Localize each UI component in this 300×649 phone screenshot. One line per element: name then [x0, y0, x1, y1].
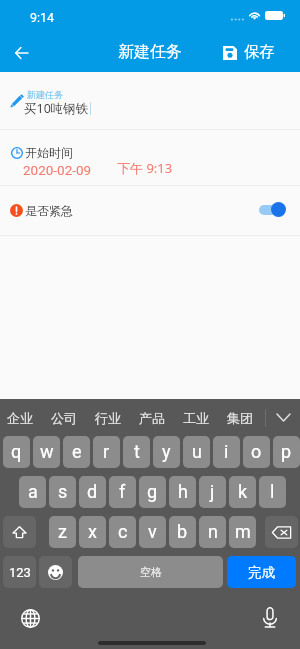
button[interactable]: z	[49, 516, 76, 548]
staticText: d	[87, 481, 98, 502]
button[interactable]: 行业	[86, 399, 130, 436]
button[interactable]: Backspace	[265, 516, 298, 548]
button[interactable]: q	[3, 436, 30, 468]
staticText: l	[270, 481, 275, 502]
button[interactable]: j	[199, 476, 226, 508]
button[interactable]: 开始时间	[0, 130, 300, 185]
staticText: 新建任务	[27, 89, 63, 100]
button[interactable]: f	[109, 476, 136, 508]
staticText: y	[162, 441, 171, 462]
button[interactable]: Back	[0, 28, 42, 72]
staticText: w	[40, 441, 54, 462]
button[interactable]: l	[259, 476, 286, 508]
staticText: 保存	[244, 42, 275, 62]
button[interactable]: Emoji	[39, 556, 72, 588]
staticText: s	[58, 481, 68, 502]
staticText: a	[28, 481, 38, 502]
button[interactable]: p	[273, 436, 300, 468]
button[interactable]: 工业	[174, 399, 218, 436]
button[interactable]: 集团	[218, 399, 262, 436]
button[interactable]: 123	[3, 556, 36, 588]
button[interactable]: b	[169, 516, 196, 548]
staticText: q	[11, 441, 22, 462]
staticText: b	[177, 521, 188, 542]
button[interactable]: g	[139, 476, 166, 508]
button[interactable]: 保存	[215, 28, 300, 72]
button[interactable]: y	[153, 436, 180, 468]
staticText: z	[58, 521, 67, 542]
button[interactable]: Change keyboard language	[16, 604, 44, 632]
button[interactable]: 新建任务	[0, 72, 300, 129]
staticText: 工业	[183, 410, 209, 426]
staticText: 下午 9:13	[117, 159, 173, 177]
button[interactable]: n	[199, 516, 226, 548]
button[interactable]: Shift	[3, 516, 36, 548]
staticText: v	[148, 521, 157, 542]
staticText: 123	[9, 565, 31, 580]
staticText: i	[224, 441, 229, 462]
staticText: 2020-02-09	[23, 162, 92, 178]
button[interactable]: r	[93, 436, 120, 468]
button[interactable]: e	[63, 436, 90, 468]
staticText: u	[192, 441, 202, 462]
button[interactable]: 空格	[78, 556, 223, 588]
button[interactable]: 是否紧急	[0, 186, 300, 235]
button[interactable]: Urgent toggle	[255, 186, 300, 235]
staticText: 集团	[227, 410, 253, 426]
button[interactable]: v	[139, 516, 166, 548]
button[interactable]: a	[19, 476, 46, 508]
staticText: 买10吨钢铁	[24, 100, 89, 117]
button[interactable]: w	[33, 436, 60, 468]
button[interactable]: More candidates	[266, 399, 300, 436]
staticText: 行业	[95, 410, 121, 426]
button[interactable]: t	[123, 436, 150, 468]
staticText: x	[88, 521, 97, 542]
staticText: p	[281, 441, 292, 462]
button[interactable]: i	[213, 436, 240, 468]
staticText: 是否紧急	[25, 203, 73, 218]
staticText: 产品	[139, 410, 165, 426]
staticText: 新建任务	[118, 42, 182, 62]
staticText: 9:14	[30, 10, 55, 25]
button[interactable]: d	[79, 476, 106, 508]
staticText: t	[134, 441, 140, 462]
staticText: c	[118, 521, 128, 542]
staticText: n	[208, 521, 218, 542]
button[interactable]: Voice input	[256, 603, 284, 631]
button[interactable]: c	[109, 516, 136, 548]
staticText: f	[119, 481, 126, 502]
button[interactable]: 完成	[227, 556, 296, 588]
staticText: j	[210, 481, 215, 502]
button[interactable]: m	[229, 516, 256, 548]
staticText: r	[103, 441, 110, 462]
button[interactable]: x	[79, 516, 106, 548]
button[interactable]: h	[169, 476, 196, 508]
staticText: o	[251, 441, 262, 462]
staticText: h	[178, 481, 188, 502]
staticText: 开始时间	[25, 145, 73, 160]
button[interactable]: u	[183, 436, 210, 468]
button[interactable]: k	[229, 476, 256, 508]
staticText: 企业	[7, 410, 33, 426]
button[interactable]: 产品	[130, 399, 174, 436]
staticText: 公司	[51, 410, 77, 426]
staticText: 完成	[248, 564, 275, 581]
staticText: k	[238, 481, 248, 502]
button[interactable]: o	[243, 436, 270, 468]
staticText: g	[147, 481, 158, 502]
staticText: m	[235, 521, 251, 542]
button[interactable]: s	[49, 476, 76, 508]
staticText: 空格	[140, 565, 162, 579]
staticText: e	[72, 441, 82, 462]
button[interactable]: 公司	[42, 399, 86, 436]
button[interactable]: 企业	[0, 399, 42, 436]
